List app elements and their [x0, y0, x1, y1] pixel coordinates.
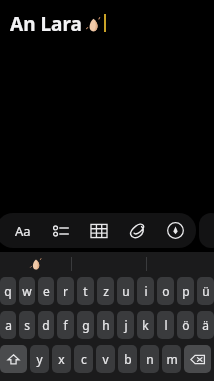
staticText: p: [182, 283, 190, 299]
button[interactable]: d: [38, 311, 54, 339]
staticText: s: [24, 317, 30, 333]
staticText: ü: [202, 283, 210, 299]
staticText: t: [83, 283, 88, 299]
staticText: z: [103, 283, 109, 299]
button[interactable]: n: [140, 345, 159, 373]
button[interactable]: e: [38, 277, 54, 305]
staticText: c: [81, 351, 87, 367]
staticText: x: [58, 351, 65, 367]
staticText: j: [124, 317, 128, 333]
button[interactable]: t: [77, 277, 94, 305]
staticText: ö: [182, 317, 190, 333]
button[interactable]: ä: [197, 311, 214, 339]
button[interactable]: k: [137, 311, 154, 339]
button[interactable]: x: [52, 345, 71, 373]
staticText: e: [43, 283, 50, 299]
button[interactable]: i: [137, 277, 154, 305]
staticText: v: [102, 351, 109, 367]
staticText: f: [63, 317, 68, 333]
button[interactable]: g: [77, 311, 94, 339]
staticText: ä: [202, 317, 209, 333]
staticText: y: [36, 351, 43, 367]
button[interactable]: f: [57, 311, 74, 339]
staticText: u: [122, 283, 130, 299]
button[interactable]: Attach file: [118, 213, 156, 248]
button[interactable]: o: [157, 277, 174, 305]
staticText: q: [4, 283, 12, 299]
button[interactable]: z: [97, 277, 114, 305]
staticText: d: [42, 317, 50, 333]
staticText: a: [5, 317, 12, 333]
button[interactable]: v: [96, 345, 115, 373]
button[interactable]: l: [157, 311, 174, 339]
button[interactable]: s: [19, 311, 35, 339]
staticText: g: [82, 317, 90, 333]
button[interactable]: Bulleted list: [42, 213, 80, 248]
button[interactable]: m: [162, 345, 181, 373]
staticText: i: [144, 283, 148, 299]
button[interactable]: c: [74, 345, 93, 373]
button[interactable]: u: [117, 277, 134, 305]
staticText: Aa: [15, 222, 31, 240]
button[interactable]: y: [30, 345, 49, 373]
button[interactable]: q: [0, 277, 16, 305]
button[interactable]: r: [57, 277, 74, 305]
button[interactable]: Text style: [4, 213, 42, 248]
button[interactable]: Shift: [0, 345, 27, 373]
staticText: w: [22, 283, 32, 299]
button[interactable]: [199, 213, 214, 248]
staticText: o: [162, 283, 170, 299]
button[interactable]: Backspace: [184, 345, 211, 373]
button[interactable]: ü: [197, 277, 214, 305]
staticText: m: [166, 351, 178, 367]
button[interactable]: b: [118, 345, 137, 373]
staticText: r: [63, 283, 68, 299]
button[interactable]: w: [19, 277, 35, 305]
staticText: l: [164, 317, 168, 333]
staticText: b: [124, 351, 132, 367]
button[interactable]: j: [117, 311, 134, 339]
button[interactable]: Draw: [156, 213, 194, 248]
button[interactable]: Insert table: [80, 213, 118, 248]
staticText: h: [102, 317, 110, 333]
button[interactable]: h: [97, 311, 114, 339]
button[interactable]: a: [0, 311, 16, 339]
button[interactable]: Emoji suggestion: [0, 252, 71, 276]
button[interactable]: p: [177, 277, 194, 305]
staticText: An Lara: [10, 11, 82, 37]
staticText: n: [146, 351, 154, 367]
button[interactable]: ö: [177, 311, 194, 339]
staticText: k: [142, 317, 149, 333]
